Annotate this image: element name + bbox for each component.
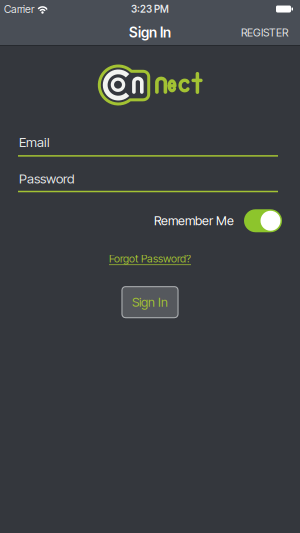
staticText: Sign In (129, 24, 171, 41)
staticText: Remember Me (154, 213, 234, 228)
button[interactable]: Forgot Password? (109, 252, 191, 265)
button[interactable]: Remember Me (244, 209, 282, 232)
staticText: REGISTER (241, 26, 288, 39)
staticText: Email (19, 134, 50, 150)
staticText: Forgot Password? (109, 252, 191, 265)
button[interactable]: Sign In (121, 286, 178, 318)
staticText: Sign In (132, 294, 168, 310)
staticText: Password (19, 171, 74, 187)
staticText: 3:23 PM (131, 3, 169, 15)
button[interactable]: REGISTER (241, 26, 300, 39)
staticText: Carrier (4, 2, 34, 15)
